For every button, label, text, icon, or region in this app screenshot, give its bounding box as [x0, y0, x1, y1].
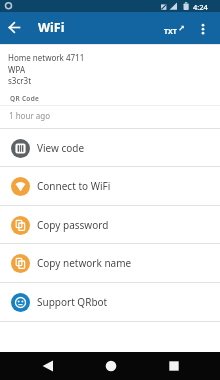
staticText: WiFi — [38, 19, 65, 36]
staticText: s3cr3t — [8, 75, 32, 86]
button[interactable]: Support QRbot — [0, 283, 220, 321]
staticText: Copy password — [37, 218, 109, 232]
button[interactable]: Copy network name — [0, 244, 220, 282]
staticText: TXT — [164, 27, 177, 37]
button[interactable] — [26, 352, 70, 380]
staticText: 1 hour ago — [9, 110, 51, 121]
staticText: Support QRbot — [37, 295, 108, 309]
button[interactable]: TXT — [160, 16, 188, 42]
button[interactable]: Connect to WiFi — [0, 167, 220, 205]
button[interactable] — [89, 352, 133, 380]
staticText: Copy network name — [37, 256, 132, 270]
staticText: QR Code — [10, 94, 40, 103]
staticText: Connect to WiFi — [37, 179, 111, 193]
button[interactable]: Copy password — [0, 206, 220, 244]
button[interactable]: View code — [0, 129, 220, 167]
staticText: Home network 4711 — [8, 52, 85, 63]
button[interactable] — [152, 352, 196, 380]
staticText: View code — [37, 141, 85, 155]
button[interactable] — [2, 18, 26, 42]
button[interactable] — [192, 16, 216, 40]
staticText: 4:24 — [193, 2, 208, 12]
staticText: WPA — [8, 64, 25, 75]
